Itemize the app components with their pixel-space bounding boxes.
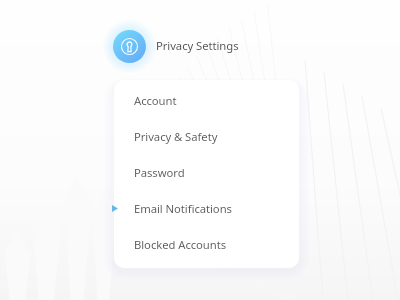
button[interactable]: Privacy & Safety bbox=[114, 118, 299, 154]
staticText: Privacy Settings bbox=[156, 38, 239, 53]
button[interactable]: Blocked Accounts bbox=[114, 226, 299, 262]
other: Selected indicator bbox=[112, 205, 118, 212]
button[interactable]: Password bbox=[114, 154, 299, 190]
button[interactable]: Privacy Settings bbox=[156, 38, 239, 53]
button[interactable]: Email Notifications bbox=[114, 190, 299, 226]
staticText: Account bbox=[134, 93, 177, 108]
button[interactable]: Account bbox=[114, 82, 299, 118]
staticText: Blocked Accounts bbox=[134, 237, 227, 252]
staticText: Email Notifications bbox=[134, 201, 232, 216]
button[interactable]: Privacy lock bbox=[113, 30, 146, 63]
staticText: Password bbox=[134, 165, 185, 180]
staticText: Privacy & Safety bbox=[134, 129, 218, 144]
